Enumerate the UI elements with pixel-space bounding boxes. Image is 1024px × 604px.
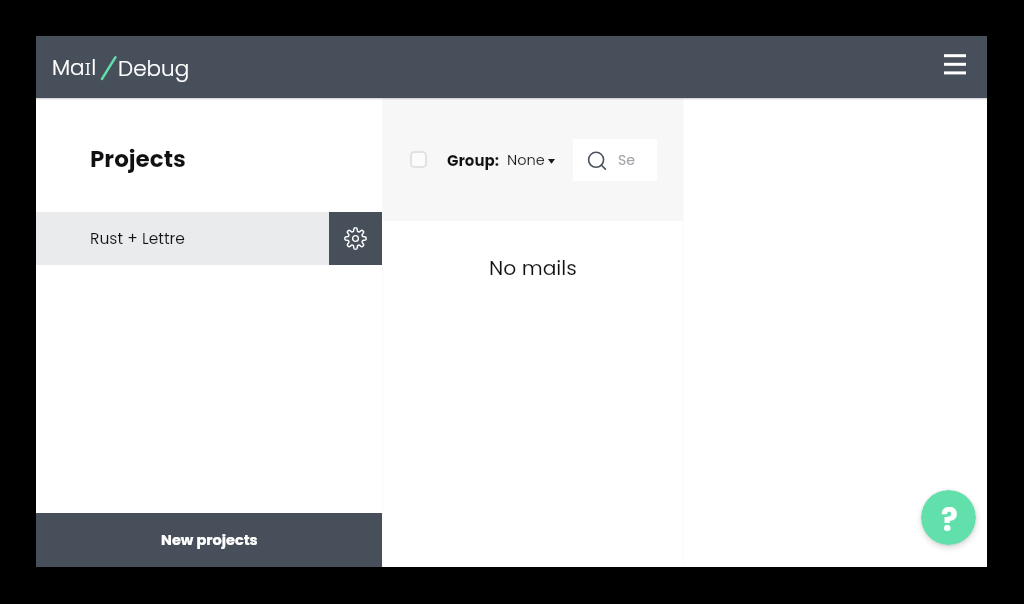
staticText: No mails: [489, 254, 577, 282]
button[interactable]: Help: [921, 490, 976, 545]
button[interactable]: Rust + Lettre: [36, 212, 382, 265]
button[interactable]: Project settings: [329, 212, 382, 265]
staticText: Group:: [447, 150, 499, 171]
button[interactable]: New projects: [36, 513, 382, 567]
staticText: New projects: [161, 530, 258, 550]
staticText: Se: [618, 150, 635, 170]
staticText: Projects: [90, 143, 186, 175]
staticText: Maɪl: [52, 52, 97, 83]
staticText: ?: [941, 498, 958, 541]
button[interactable]: Select all: [410, 151, 427, 168]
button[interactable]: Search mails: [573, 139, 657, 181]
staticText: None: [507, 150, 545, 170]
staticText: Debug: [118, 53, 190, 83]
button[interactable]: None: [507, 150, 555, 170]
button[interactable]: Menu: [933, 42, 977, 86]
staticText: Rust + Lettre: [90, 228, 185, 250]
